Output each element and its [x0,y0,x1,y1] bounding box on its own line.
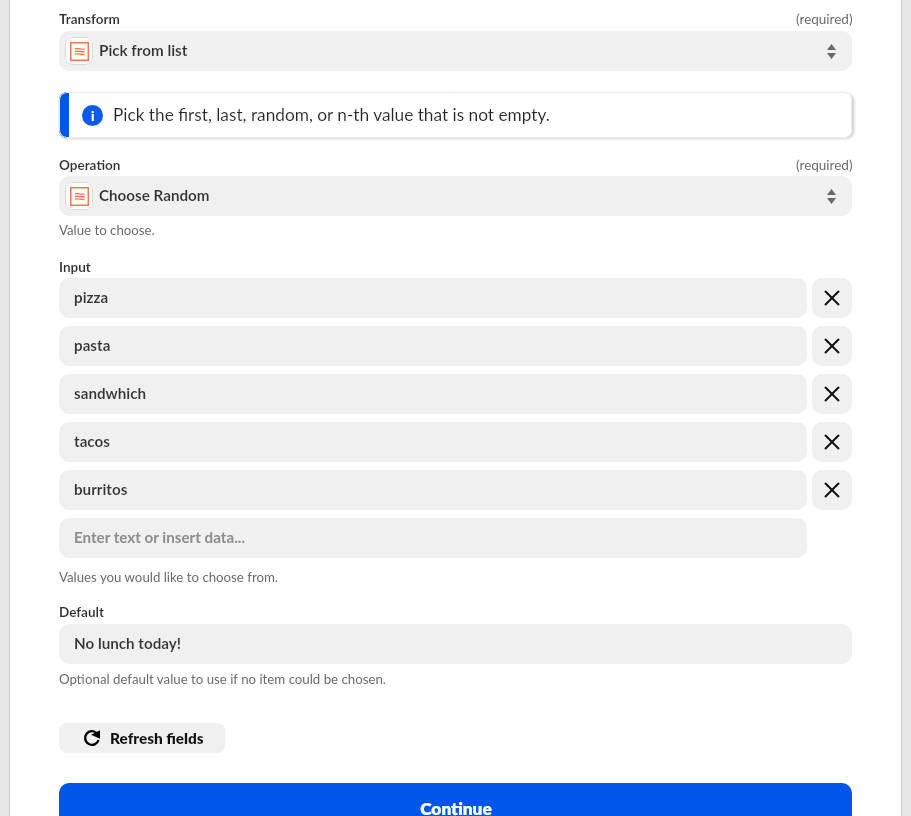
button[interactable]: pizza [59,278,807,318]
button[interactable]: Remove item [812,326,852,366]
staticText: pizza [74,288,109,306]
button[interactable]: Enter text or insert data... [59,518,807,558]
staticText: Pick from list [99,41,188,59]
staticText: (required) [796,157,853,173]
button[interactable]: burritos [59,470,807,510]
button[interactable]: pasta [59,326,807,366]
button[interactable]: tacos [59,422,807,462]
button[interactable]: Continue [59,783,852,816]
staticText: i [91,107,95,124]
staticText: Value to choose. [59,222,155,238]
staticText: Values you would like to choose from. [59,569,278,585]
staticText: No lunch today! [74,634,182,652]
button[interactable]: Remove item [812,470,852,510]
staticText: Input [59,259,91,275]
button[interactable]: Remove item [812,422,852,462]
staticText: pasta [74,336,111,354]
staticText: Enter text or insert data... [74,528,245,546]
staticText: sandwhich [74,384,147,402]
staticText: Transform [59,11,120,27]
staticText: burritos [74,480,128,498]
staticText: Continue [420,798,492,816]
button[interactable]: Pick from list [59,31,852,71]
button[interactable]: sandwhich [59,374,807,414]
staticText: (required) [796,11,853,27]
button[interactable]: Refresh fields [59,723,225,753]
staticText: Choose Random [99,186,210,204]
staticText: Operation [59,157,121,173]
staticText: Refresh fields [110,729,204,747]
staticText: tacos [74,432,110,450]
staticText: Pick the first, last, random, or n-th va… [113,104,550,125]
staticText: Default [59,604,104,620]
staticText: Optional default value to use if no item… [59,671,386,687]
button[interactable]: Remove item [812,278,852,318]
button[interactable]: Remove item [812,374,852,414]
button[interactable]: No lunch today! [59,624,852,664]
button[interactable]: Choose Random [59,176,852,216]
